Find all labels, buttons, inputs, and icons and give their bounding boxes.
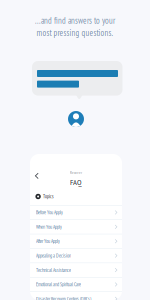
staticText: When You Apply — [36, 224, 62, 230]
staticText: Recover — [70, 170, 82, 175]
staticText: FAQ — [70, 176, 82, 187]
button[interactable]: When You Apply — [30, 219, 122, 234]
button[interactable]: Appealing a Decision — [30, 248, 122, 263]
button[interactable]: After You Apply — [30, 234, 122, 248]
staticText: Emotional and Spiritual Care — [36, 281, 81, 288]
button[interactable]: Technical Assistance — [30, 263, 122, 277]
staticText: Appealing a Decision — [36, 252, 71, 259]
staticText: Topics — [43, 193, 54, 199]
staticText: Disaster Recovery Centers (DRCs) — [36, 296, 91, 300]
button[interactable]: Emotional and Spiritual Care — [30, 277, 122, 291]
button[interactable]: Back — [32, 170, 41, 182]
staticText: most pressing questions. — [36, 27, 113, 38]
staticText: ...and find answers to your — [35, 15, 115, 26]
button[interactable]: Disaster Recovery Centers (DRCs) — [30, 291, 122, 300]
staticText: After You Apply — [36, 238, 60, 244]
staticText: Before You Apply — [36, 209, 63, 216]
button[interactable]: Before You Apply — [30, 205, 122, 219]
staticText: Technical Assistance — [36, 267, 71, 273]
